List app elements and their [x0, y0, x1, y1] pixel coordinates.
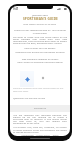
staticText: Shop the collection and start saving tod…	[13, 87, 67, 93]
staticText: Early access to seasonal clearance event…	[13, 60, 67, 63]
staticText: Unsubscribe · Privacy Policy · Terms	[13, 134, 67, 136]
staticText: YOUR WEEKLY ROUND-UP OF GEAR	[23, 23, 57, 26]
staticText: Members-only pricing on thousands of ite…	[13, 50, 67, 53]
staticText: JANUARY 2024	[32, 14, 48, 17]
button[interactable]: Brand mark	[39, 74, 46, 81]
staticText: 9:41	[13, 7, 19, 11]
staticText: Questions? We are here to help	[13, 97, 67, 100]
staticText: FOLLOW US	[34, 107, 47, 110]
staticText: is now ready.	[13, 31, 67, 34]
staticText: We want to make sure you know about all …	[13, 35, 67, 45]
staticText: Here is what you can expect:	[13, 46, 67, 49]
staticText: Thank you for registering with us. Your …	[13, 28, 67, 31]
staticText: SPORTSMAN'S GUIDE	[23, 17, 58, 21]
staticText: Free standard shipping on orders	[13, 57, 67, 60]
staticText: You are receiving this message because y…	[13, 113, 67, 125]
staticText: 123 Outdoor Way, Suite 400, Anywhere, MN…	[13, 126, 67, 133]
button[interactable]: Featured product	[20, 71, 34, 87]
